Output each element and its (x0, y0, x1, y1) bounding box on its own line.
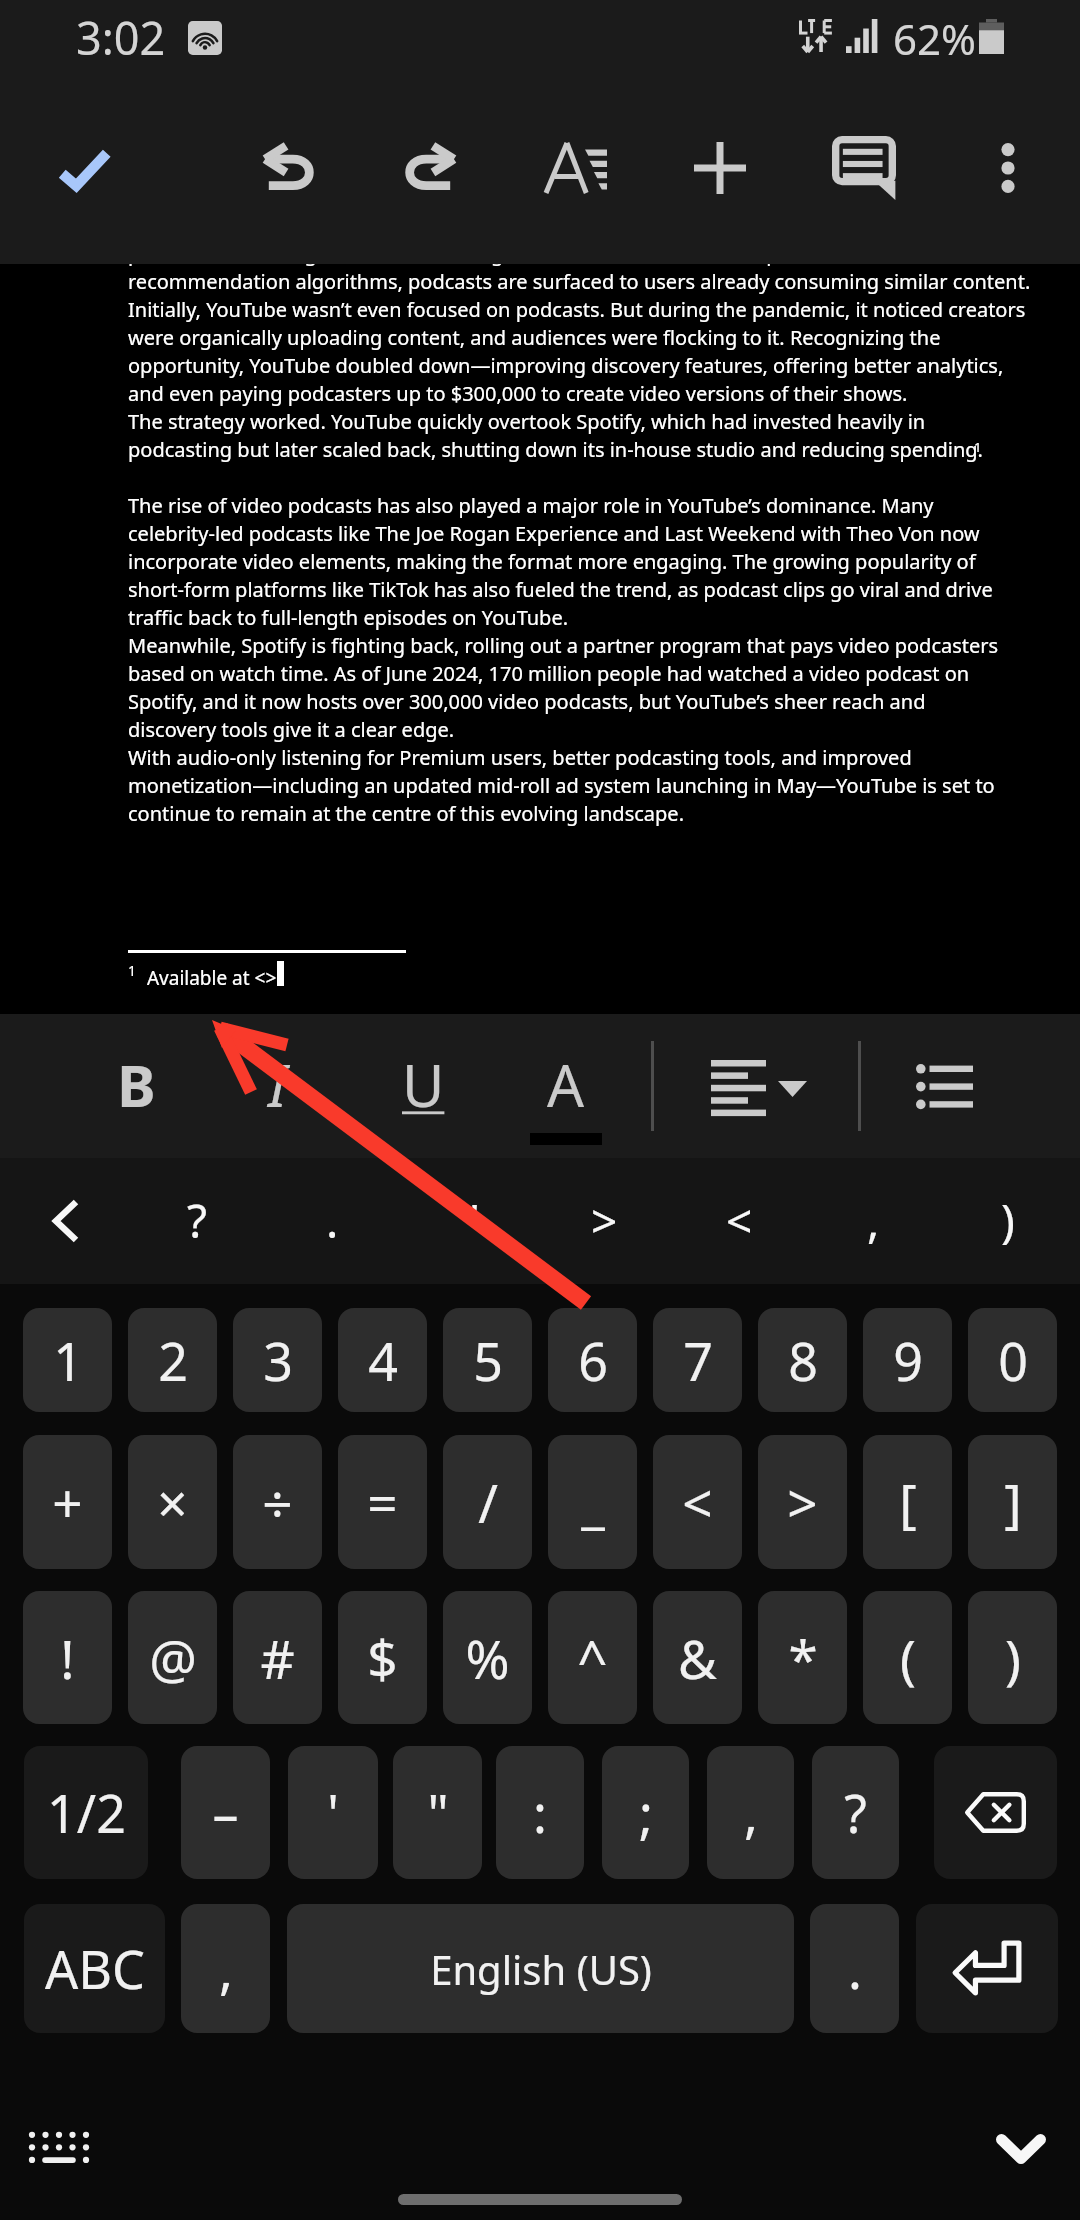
staticText: celebrity-led podcasts like The Joe Roga… (128, 520, 980, 547)
button[interactable]: Redo (373, 103, 489, 231)
button[interactable]: Comments (806, 104, 922, 232)
button[interactable]: 1/2 (24, 1746, 148, 1879)
button[interactable]: Done (26, 105, 142, 233)
button[interactable]: 3 (233, 1308, 322, 1412)
button[interactable]: ; (602, 1746, 689, 1879)
button[interactable]: 0 (968, 1308, 1057, 1412)
staticText: ÷ (262, 1466, 293, 1538)
button[interactable]: Previous (4, 1158, 128, 1284)
button[interactable]: More options (950, 104, 1066, 232)
button[interactable]: Paragraph alignment (677, 1016, 867, 1160)
staticText: Meanwhile, Spotify is fighting back, rol… (128, 632, 999, 659)
button[interactable]: Bulleted list (880, 1014, 1008, 1158)
button[interactable]: Text formatting (518, 104, 634, 232)
button[interactable]: . (810, 1904, 899, 2033)
button[interactable]: 8 (758, 1308, 847, 1412)
staticText: [ (899, 1466, 917, 1538)
button[interactable]: 6 (548, 1308, 637, 1412)
button[interactable]: Backspace (934, 1746, 1057, 1879)
button[interactable]: ? (135, 1158, 259, 1284)
staticText: : (533, 1777, 547, 1848)
button[interactable]: I (207, 1014, 347, 1158)
staticText: – (212, 1777, 239, 1848)
button[interactable]: 5 (443, 1308, 532, 1412)
button[interactable]: 1 (23, 1308, 112, 1412)
button[interactable]: % (443, 1591, 532, 1724)
button[interactable]: ] (968, 1435, 1057, 1569)
button[interactable]: # (233, 1591, 322, 1724)
staticText: podcasting but later scaled back, shutti… (128, 436, 983, 463)
button[interactable]: Insert (662, 104, 778, 232)
button[interactable]: : (496, 1746, 584, 1879)
staticText: + (52, 1466, 83, 1538)
staticText: Available at <> (142, 965, 277, 991)
button[interactable]: > (542, 1158, 666, 1284)
staticText: English (US) (430, 1942, 652, 1996)
button[interactable]: $ (338, 1591, 427, 1724)
staticText: 3 (263, 1325, 293, 1396)
staticText: I (268, 1045, 287, 1124)
button[interactable]: " (408, 1158, 532, 1284)
staticText: 3:02 (76, 7, 166, 68)
button[interactable]: . (270, 1158, 394, 1284)
staticText: ^ (577, 1622, 608, 1694)
staticText: 9 (893, 1325, 923, 1396)
staticText: " (461, 1189, 480, 1252)
button[interactable]: 9 (863, 1308, 952, 1412)
staticText: B (117, 1045, 156, 1124)
button[interactable]: – (181, 1746, 270, 1879)
button[interactable]: ÷ (233, 1435, 322, 1569)
button[interactable]: Hide keyboard (971, 2099, 1071, 2199)
button[interactable]: 7 (653, 1308, 742, 1412)
button[interactable]: Undo (230, 103, 346, 231)
staticText: ' (327, 1777, 339, 1848)
staticText: > (787, 1466, 818, 1538)
button[interactable]: A (496, 1014, 636, 1158)
button[interactable]: / (443, 1435, 532, 1569)
button[interactable]: [ (863, 1435, 952, 1569)
staticText: < (682, 1466, 713, 1538)
button[interactable]: B (66, 1014, 206, 1158)
button[interactable]: 2 (128, 1308, 217, 1412)
staticText: @ (149, 1622, 197, 1694)
button[interactable]: * (758, 1591, 847, 1724)
button[interactable]: , (811, 1158, 935, 1284)
button[interactable]: ^ (548, 1591, 637, 1724)
button[interactable]: _ (548, 1435, 637, 1569)
button[interactable]: ( (863, 1591, 952, 1724)
button[interactable]: + (23, 1435, 112, 1569)
button[interactable]: ABC (24, 1904, 165, 2033)
button[interactable]: × (128, 1435, 217, 1569)
button[interactable]: Enter (916, 1904, 1058, 2033)
button[interactable]: ? (812, 1746, 899, 1879)
button[interactable]: ! (23, 1591, 112, 1724)
button[interactable]: Switch keyboard (16, 2104, 102, 2190)
staticText: 8 (788, 1325, 818, 1396)
button[interactable]: English (US) (287, 1904, 794, 2033)
staticText: 7 (683, 1325, 713, 1396)
button[interactable]: = (338, 1435, 427, 1569)
staticText: platforms have long dominated. Through i… (128, 264, 850, 267)
staticText: 4 (368, 1325, 398, 1396)
staticText: discovery tools give it a clear edge. (128, 716, 455, 743)
staticText: . (848, 1933, 862, 2004)
button[interactable]: 4 (338, 1308, 427, 1412)
button[interactable]: , (181, 1904, 270, 2033)
button[interactable]: < (677, 1158, 801, 1284)
button[interactable]: ) (946, 1158, 1070, 1284)
staticText: × (157, 1466, 188, 1538)
staticText: / (478, 1466, 498, 1538)
staticText: < (726, 1189, 753, 1252)
button[interactable]: > (758, 1435, 847, 1569)
button[interactable]: ) (968, 1591, 1057, 1724)
button[interactable]: , (707, 1746, 794, 1879)
button[interactable]: @ (128, 1591, 217, 1724)
button[interactable]: ' (288, 1746, 378, 1879)
staticText: ; (639, 1777, 653, 1848)
button[interactable]: < (653, 1435, 742, 1569)
staticText: . (326, 1189, 339, 1252)
staticText: " (427, 1777, 449, 1848)
button[interactable]: " (393, 1746, 482, 1879)
button[interactable]: U (353, 1014, 493, 1158)
button[interactable]: & (653, 1591, 742, 1724)
